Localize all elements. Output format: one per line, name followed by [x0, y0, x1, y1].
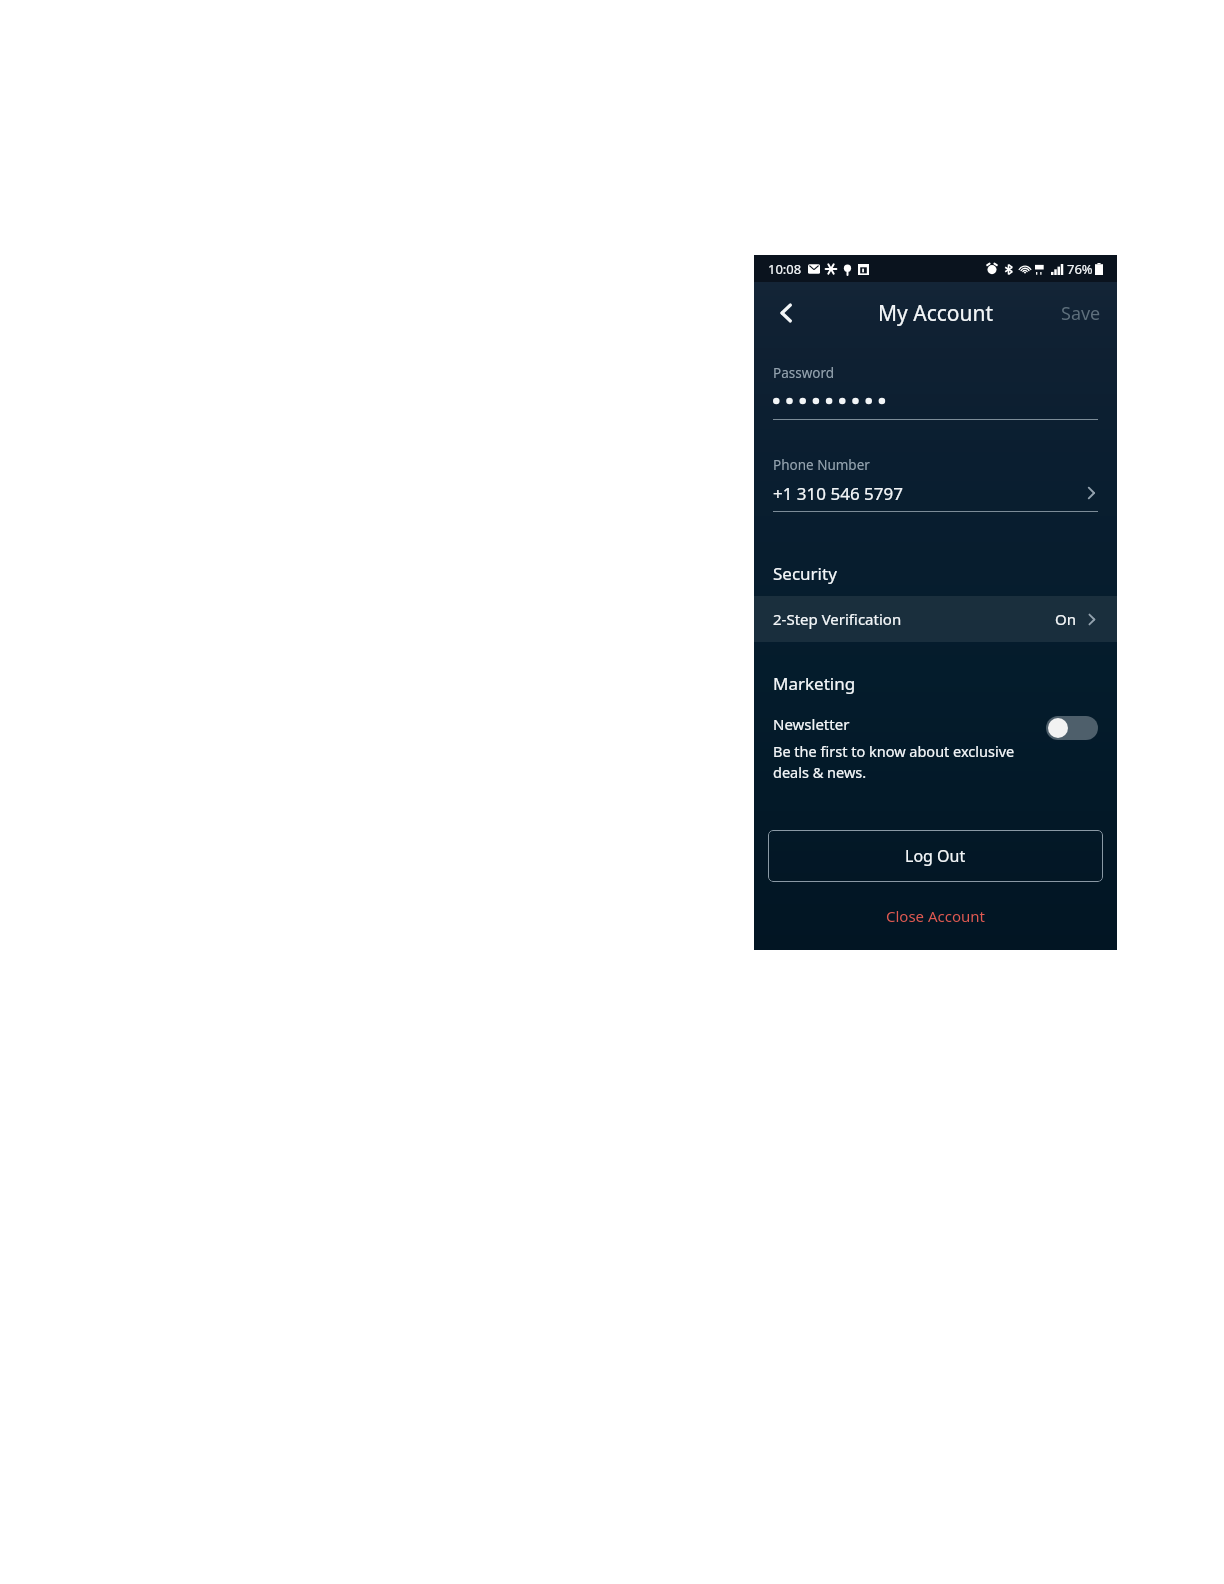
button[interactable]: Back	[762, 289, 810, 337]
staticText: Newsletter	[773, 714, 850, 734]
staticText: Close Account	[886, 906, 985, 926]
staticText: Password	[773, 364, 835, 382]
staticText: Log Out	[905, 845, 966, 867]
staticText: Security	[773, 562, 837, 585]
button[interactable]: Log Out	[768, 830, 1103, 882]
button[interactable]: 2-Step Verification	[754, 596, 1117, 642]
button[interactable]: Newsletter toggle	[1046, 716, 1098, 740]
button[interactable]: Save	[1045, 291, 1117, 336]
staticText: 76%	[1067, 260, 1093, 278]
staticText: My Account	[878, 299, 994, 328]
staticText: On	[1055, 609, 1076, 629]
staticText: Marketing	[773, 672, 856, 695]
staticText: +1 310 546 5797	[773, 482, 903, 505]
staticText: 2-Step Verification	[773, 609, 902, 629]
staticText: Save	[1061, 301, 1101, 326]
staticText: Be the first to know about exclusive dea…	[773, 741, 1036, 783]
button[interactable]: Close Account	[866, 900, 1005, 932]
button[interactable]: Password	[754, 364, 1117, 420]
staticText: Phone Number	[773, 456, 870, 474]
staticText: 10:08	[768, 260, 802, 278]
button[interactable]: Newsletter	[754, 706, 1117, 791]
button[interactable]: Phone Number	[754, 456, 1117, 512]
